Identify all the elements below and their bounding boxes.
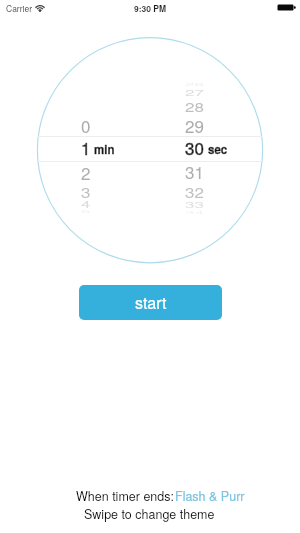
staticText: 5: [81, 208, 91, 214]
staticText: When timer ends:: [76, 487, 174, 505]
staticText: 29: [185, 113, 204, 136]
other: Battery full: [277, 4, 296, 11]
staticText: 2: [81, 160, 91, 183]
staticText: min: [94, 141, 115, 157]
staticText: 30: [185, 135, 204, 159]
staticText: 1: [81, 135, 91, 159]
button[interactable]: start: [79, 285, 222, 320]
staticText: Flash & Purr: [175, 487, 245, 505]
staticText: Swipe to change theme: [84, 505, 215, 523]
staticText: 32: [185, 181, 204, 201]
staticText: 33: [185, 199, 204, 209]
staticText: 4: [81, 198, 91, 210]
staticText: start: [135, 291, 167, 314]
button[interactable]: Flash & Purr: [175, 487, 245, 505]
staticText: sec: [208, 141, 228, 157]
staticText: 26: [185, 83, 204, 87]
staticText: 1: [81, 135, 91, 159]
staticText: 9:30 PM: [134, 2, 167, 14]
staticText: sec: [208, 141, 228, 157]
other: Wi-Fi signal: [35, 4, 45, 12]
staticText: 31: [185, 159, 204, 182]
staticText: Carrier: [6, 2, 32, 14]
staticText: 28: [185, 97, 204, 115]
staticText: 27: [185, 86, 204, 98]
staticText: 30: [185, 135, 204, 159]
staticText: min: [94, 141, 115, 157]
staticText: 3: [81, 181, 91, 201]
staticText: 0: [81, 113, 91, 136]
staticText: 34: [185, 210, 204, 214]
